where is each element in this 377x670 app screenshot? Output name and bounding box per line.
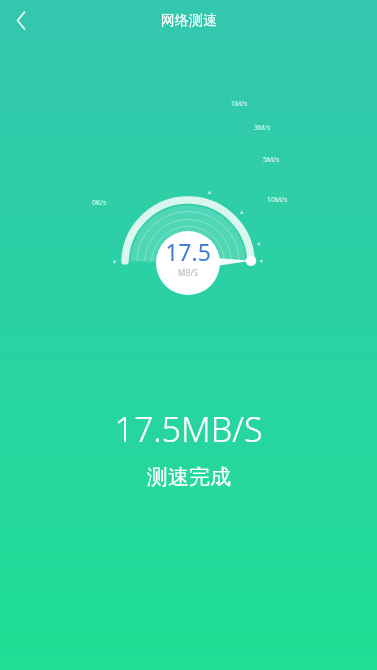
staticText: 网络测速 xyxy=(161,12,217,30)
staticText: MB/S xyxy=(158,267,218,278)
staticText: 17.5 xyxy=(158,236,218,267)
staticText: 5M/s xyxy=(263,155,280,165)
button[interactable]: Back xyxy=(7,6,36,35)
staticText: 10M/s xyxy=(267,195,288,205)
staticText: 测速完成 xyxy=(147,464,231,490)
staticText: 0K/s xyxy=(92,198,107,208)
staticText: 17.5MB/S xyxy=(114,406,263,452)
staticText: 1M/s xyxy=(231,99,248,109)
staticText: 3M/s xyxy=(254,123,271,133)
